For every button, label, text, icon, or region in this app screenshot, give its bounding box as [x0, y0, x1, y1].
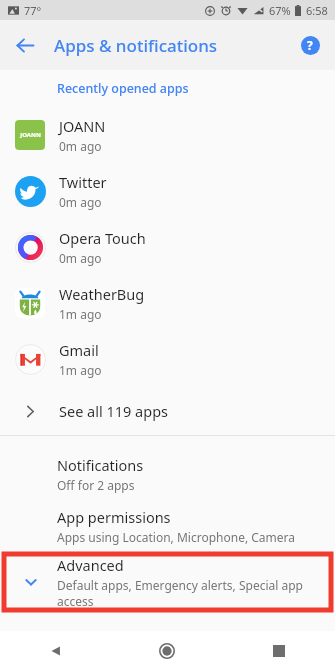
staticText: Apps & notifications: [54, 34, 218, 57]
button[interactable]: Notifications: [0, 448, 335, 500]
staticText: ?: [307, 37, 313, 53]
staticText: Apps using Location, Microphone, Camera: [57, 529, 295, 545]
staticText: Advanced: [57, 555, 124, 575]
staticText: 6:58: [306, 3, 328, 18]
staticText: Gmail: [59, 340, 99, 360]
staticText: 1m ago: [59, 362, 102, 378]
staticText: 1m ago: [59, 306, 102, 322]
button[interactable]: Back: [0, 631, 111, 671]
button[interactable]: See all 119 apps: [0, 387, 335, 435]
staticText: See all 119 apps: [59, 401, 169, 421]
staticText: 67%: [269, 3, 291, 18]
staticText: Twitter: [59, 172, 107, 192]
staticText: WeatherBug: [59, 284, 145, 304]
staticText: 0m ago: [59, 194, 102, 210]
staticText: 0m ago: [59, 250, 102, 266]
button[interactable]: Recent apps: [223, 631, 335, 671]
button[interactable]: Help: [293, 28, 327, 62]
button[interactable]: Twitter: [0, 163, 335, 219]
button[interactable]: Advanced: [4, 554, 331, 610]
button[interactable]: Back: [6, 26, 44, 64]
staticText: 77°: [24, 3, 42, 18]
button[interactable]: WeatherBug: [0, 275, 335, 331]
staticText: JOANN: [20, 131, 41, 139]
button[interactable]: Opera Touch: [0, 219, 335, 275]
staticText: JOANN: [59, 116, 106, 136]
staticText: 0m ago: [59, 138, 102, 154]
staticText: Recently opened apps: [57, 80, 189, 97]
staticText: Notifications: [57, 455, 144, 475]
staticText: Default apps, Emergency alerts, Special …: [57, 577, 331, 609]
button[interactable]: Home: [111, 631, 223, 671]
button[interactable]: JOANN: [0, 107, 335, 163]
button[interactable]: Gmail: [0, 331, 335, 387]
button[interactable]: App permissions: [0, 500, 335, 552]
staticText: Off for 2 apps: [57, 477, 135, 493]
staticText: Opera Touch: [59, 228, 146, 248]
staticText: App permissions: [57, 507, 171, 527]
